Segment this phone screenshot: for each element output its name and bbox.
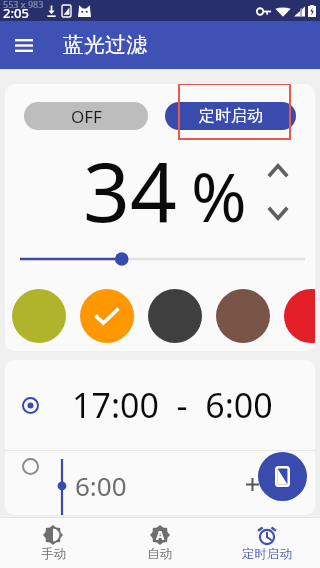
button[interactable]: Colour <box>12 289 66 343</box>
button[interactable]: Colour <box>284 289 315 343</box>
button[interactable]: Colour <box>148 289 202 343</box>
staticText: 6:00 <box>75 468 127 503</box>
button[interactable]: A <box>106 525 213 562</box>
staticText: A <box>156 527 165 543</box>
staticText: 553 x 983 <box>3 0 44 10</box>
staticText: 34 <box>83 134 177 246</box>
button[interactable]: Decrease <box>258 193 298 233</box>
button[interactable]: Colour <box>80 289 134 343</box>
staticText: OFF <box>71 105 102 128</box>
button[interactable]: 定时启动 <box>213 525 320 562</box>
staticText: 2:05 <box>3 4 29 22</box>
button[interactable]: OFF <box>24 102 148 130</box>
staticText: 17:00 - 6:00 <box>72 382 273 428</box>
staticText: % <box>191 150 247 241</box>
button[interactable]: Menu <box>0 21 48 69</box>
staticText: 定时启动 <box>242 546 292 562</box>
button[interactable]: Intensity <box>15 247 310 271</box>
button[interactable]: Add schedule <box>258 452 307 501</box>
button[interactable]: 定时启动 <box>165 102 296 130</box>
button[interactable]: 手动 <box>0 525 106 562</box>
staticText: 定时启动 <box>199 106 263 126</box>
button[interactable]: Increase <box>258 151 298 191</box>
button[interactable]: Colour <box>216 289 270 343</box>
button[interactable]: 6:00 <box>5 451 315 515</box>
staticText: 手动 <box>41 546 66 562</box>
staticText: 自动 <box>147 546 172 562</box>
button[interactable]: 17:00 - 6:00 <box>5 360 315 450</box>
staticText: 蓝光过滤 <box>63 32 147 58</box>
